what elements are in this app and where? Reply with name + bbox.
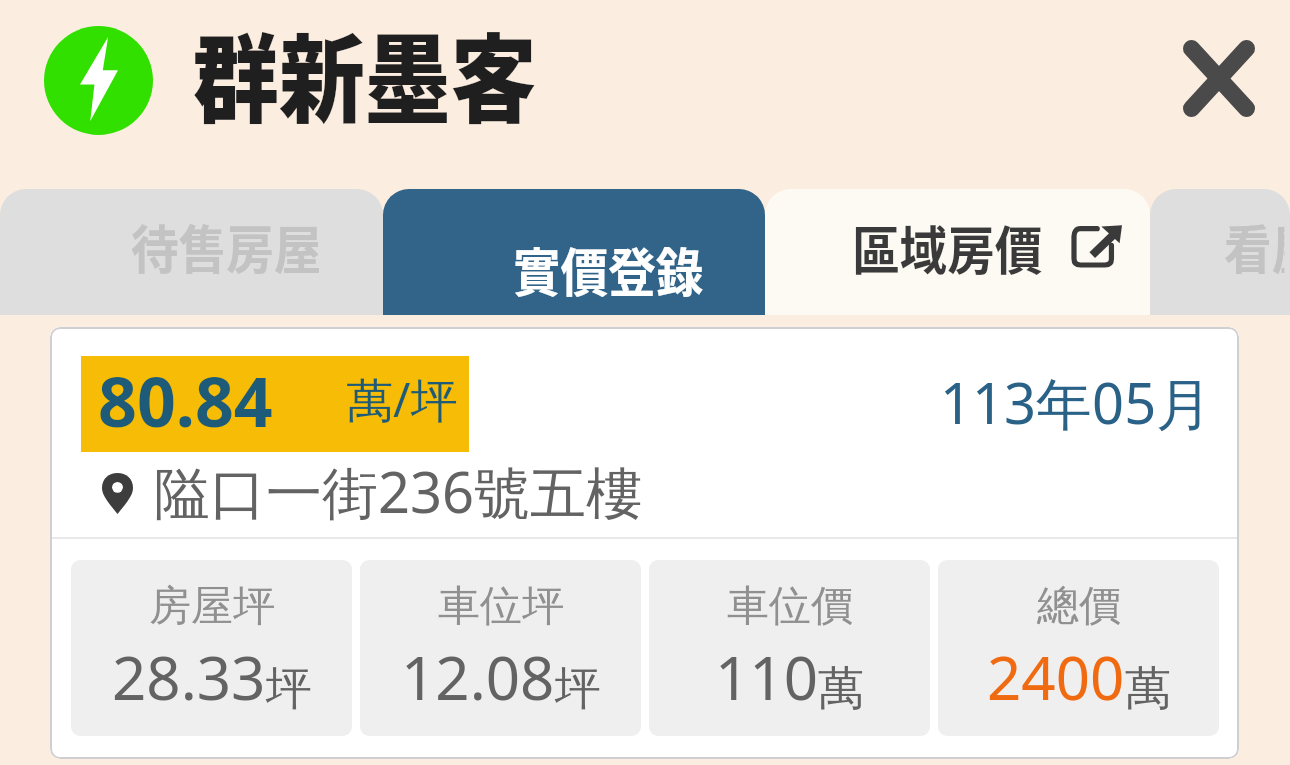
button[interactable]: 房屋坪 [71, 560, 352, 736]
button[interactable]: App logo [44, 26, 153, 135]
other: Opens in a new window [1074, 224, 1122, 265]
staticText: 區域房價 [852, 210, 1043, 285]
staticText: 總價 [1037, 580, 1121, 633]
staticText: 群新墨客 [193, 3, 537, 142]
staticText: 113年05月 [940, 364, 1213, 440]
staticText: 坪 [555, 660, 601, 718]
button[interactable]: 80.84 [50, 327, 1239, 759]
staticText: 80.84 [98, 354, 273, 447]
staticText: 2400 [987, 636, 1125, 718]
staticText: 看屋 [1224, 209, 1284, 284]
staticText: 房屋坪 [149, 580, 275, 633]
button[interactable]: 待售房屋 [0, 189, 383, 315]
staticText: 車位坪 [438, 580, 564, 633]
button[interactable]: 實價登錄 [383, 189, 765, 315]
staticText: 坪 [266, 660, 312, 718]
button[interactable]: Close [1164, 23, 1274, 133]
button[interactable]: 區域房價 [765, 189, 1150, 315]
staticText: 待售房屋 [131, 209, 322, 284]
button[interactable]: 看屋 [1150, 189, 1290, 315]
staticText: 萬/坪 [346, 367, 458, 431]
button[interactable]: 車位價 [649, 560, 930, 736]
staticText: 28.33 [112, 636, 266, 718]
staticText: 110 [715, 636, 818, 718]
staticText: 實價登錄 [513, 232, 704, 307]
button[interactable]: 總價 [938, 560, 1219, 736]
staticText: 萬 [818, 660, 864, 718]
staticText: 12.08 [401, 636, 555, 718]
button[interactable]: 車位坪 [360, 560, 641, 736]
staticText: 車位價 [727, 580, 853, 633]
staticText: 萬 [1125, 660, 1171, 718]
staticText: 隘口一街236號五樓 [154, 453, 643, 529]
